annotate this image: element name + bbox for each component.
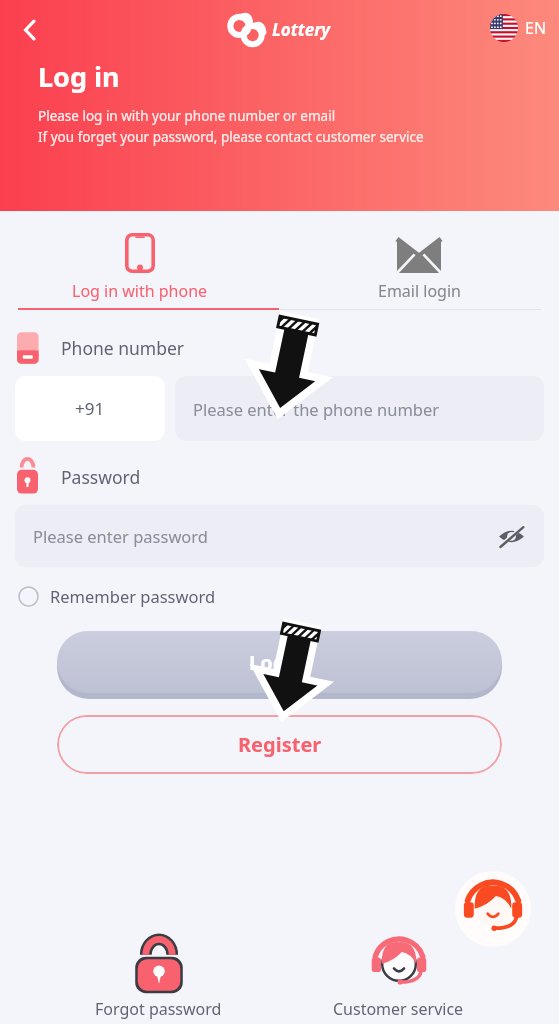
staticText: Please log in with your phone number or … xyxy=(38,107,336,125)
button[interactable]: Show password xyxy=(488,513,534,559)
staticText: EN xyxy=(525,17,547,39)
staticText: Please enter the phone number xyxy=(193,398,440,420)
staticText: Please enter password xyxy=(33,525,208,547)
staticText: If you forget your password, please cont… xyxy=(38,128,424,146)
button[interactable]: Please enter the phone number xyxy=(175,376,544,441)
staticText: Phone number xyxy=(61,336,185,360)
staticText: Lottery xyxy=(272,18,331,41)
staticText: Log in xyxy=(249,649,310,676)
staticText: Register xyxy=(238,731,322,758)
button[interactable]: Back xyxy=(8,8,52,52)
button[interactable]: +91 xyxy=(15,376,165,441)
button[interactable]: Log in xyxy=(57,631,502,693)
button[interactable]: Customer service chat xyxy=(455,871,531,947)
staticText: Email login xyxy=(378,280,461,302)
staticText: Log in with phone xyxy=(72,280,208,302)
button[interactable]: Please enter password xyxy=(15,505,544,567)
staticText: Log in xyxy=(38,58,120,95)
button[interactable]: Register xyxy=(57,715,502,774)
button[interactable]: Log in with phone xyxy=(0,221,279,308)
staticText: Remember password xyxy=(50,585,216,607)
staticText: +91 xyxy=(75,397,105,420)
button[interactable]: Forgot password xyxy=(79,933,238,1022)
staticText: Password xyxy=(61,465,141,489)
button[interactable]: EN xyxy=(490,14,547,42)
button[interactable]: Remember password xyxy=(16,581,218,611)
staticText: Customer service xyxy=(333,998,464,1020)
button[interactable]: Email login xyxy=(279,221,559,308)
button[interactable]: Customer service xyxy=(317,933,480,1022)
staticText: Forgot password xyxy=(95,998,222,1020)
